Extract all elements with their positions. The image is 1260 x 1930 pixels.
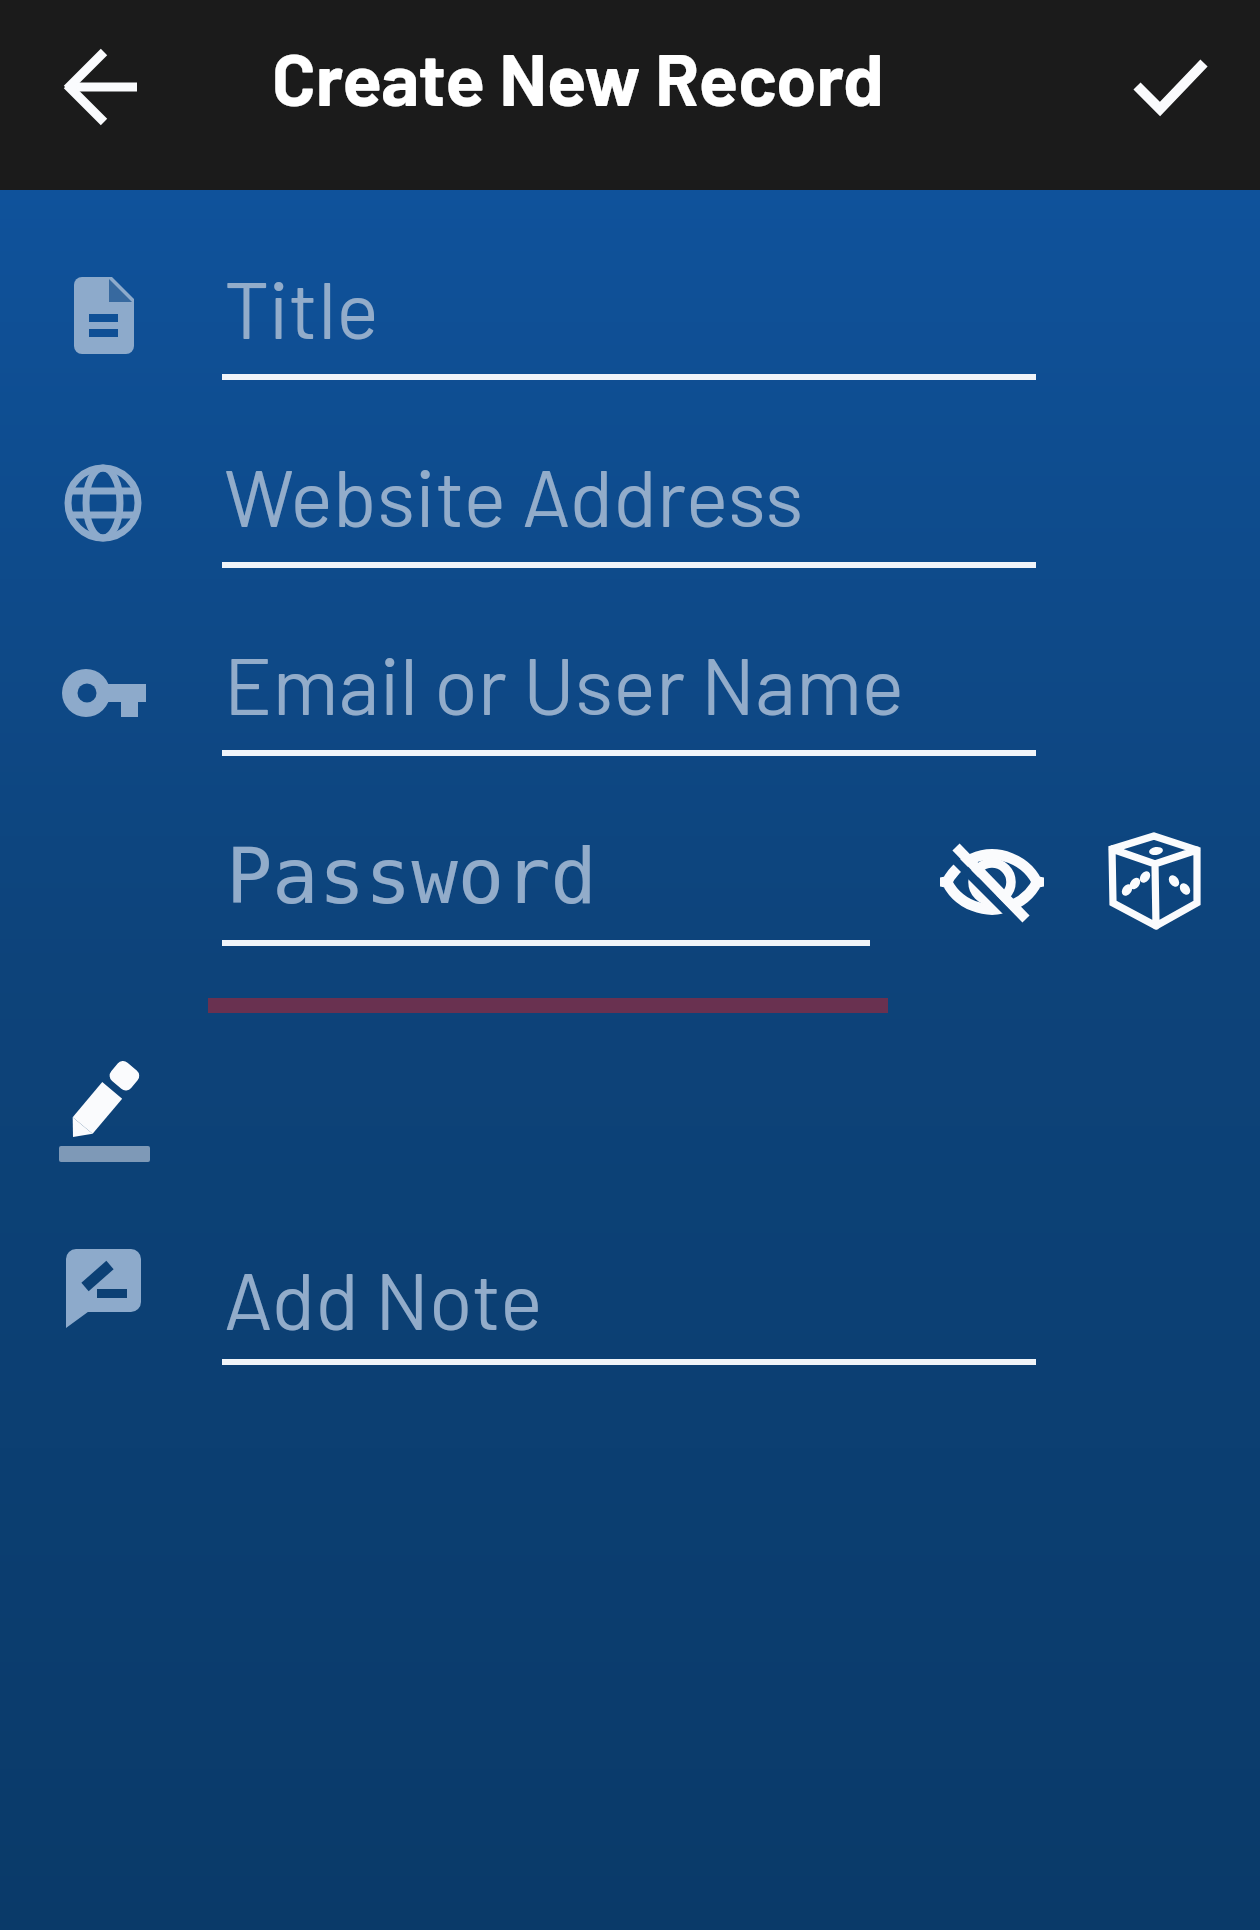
button[interactable]	[220, 447, 1042, 570]
staticText: Email or User Name	[224, 635, 905, 731]
button[interactable]	[220, 1250, 1042, 1367]
staticText: Add Note	[224, 1250, 543, 1346]
button[interactable]	[220, 635, 1042, 758]
button[interactable]	[55, 39, 151, 135]
button[interactable]	[220, 259, 1042, 382]
staticText: Title	[224, 259, 379, 355]
button[interactable]	[1106, 828, 1206, 928]
button[interactable]	[940, 830, 1044, 934]
staticText: Website Address	[224, 447, 804, 543]
staticText: Create New Record	[272, 34, 884, 120]
button[interactable]	[1120, 40, 1220, 140]
staticText: Password	[226, 832, 597, 922]
button[interactable]	[210, 800, 870, 950]
